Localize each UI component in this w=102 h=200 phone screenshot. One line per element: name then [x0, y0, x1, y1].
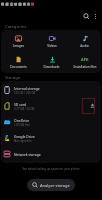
button[interactable]: Internal storage	[1, 81, 101, 97]
staticText: See what's taking up space on your phone	[22, 167, 80, 171]
staticText: Installation files	[73, 65, 97, 69]
staticText: Videos	[47, 44, 57, 48]
button[interactable]: Google Drive	[1, 129, 101, 145]
button[interactable]: APK	[68, 51, 101, 73]
staticText: Images	[13, 44, 24, 48]
button[interactable]: Analyze storage	[27, 179, 75, 191]
button[interactable]: Search	[80, 10, 92, 22]
staticText: APK	[81, 57, 89, 62]
button[interactable]: OneDrive	[1, 113, 101, 129]
staticText: OneDrive	[14, 118, 30, 123]
staticText: Storage	[5, 75, 21, 81]
staticText: 1.65 GB free	[14, 123, 31, 127]
button[interactable]: Audio	[68, 30, 101, 51]
button[interactable]: Documents	[1, 51, 35, 73]
staticText: 120 GB / 256 GB	[14, 91, 36, 95]
button[interactable]: Downloads	[35, 51, 68, 73]
staticText: Downloads	[43, 65, 60, 69]
staticText: Not signed in	[14, 139, 32, 143]
staticText: Network storage	[14, 152, 41, 157]
button[interactable]: Videos	[35, 30, 68, 51]
staticText: Analyze storage	[40, 183, 70, 188]
button[interactable]: Images	[1, 30, 35, 51]
button[interactable]: Unmount SD card	[87, 100, 97, 110]
button[interactable]: Network storage	[1, 145, 101, 161]
staticText: Internal storage	[14, 86, 40, 91]
staticText: SD card	[14, 102, 27, 107]
staticText: Google Drive	[14, 134, 35, 139]
staticText: Documents	[10, 65, 27, 69]
staticText: Audio	[80, 44, 89, 48]
staticText: 3.27 GB / 32 GB	[14, 107, 35, 111]
button[interactable]: SD card	[1, 97, 101, 113]
staticText: Categories	[5, 24, 27, 30]
button[interactable]: More options	[89, 10, 101, 22]
